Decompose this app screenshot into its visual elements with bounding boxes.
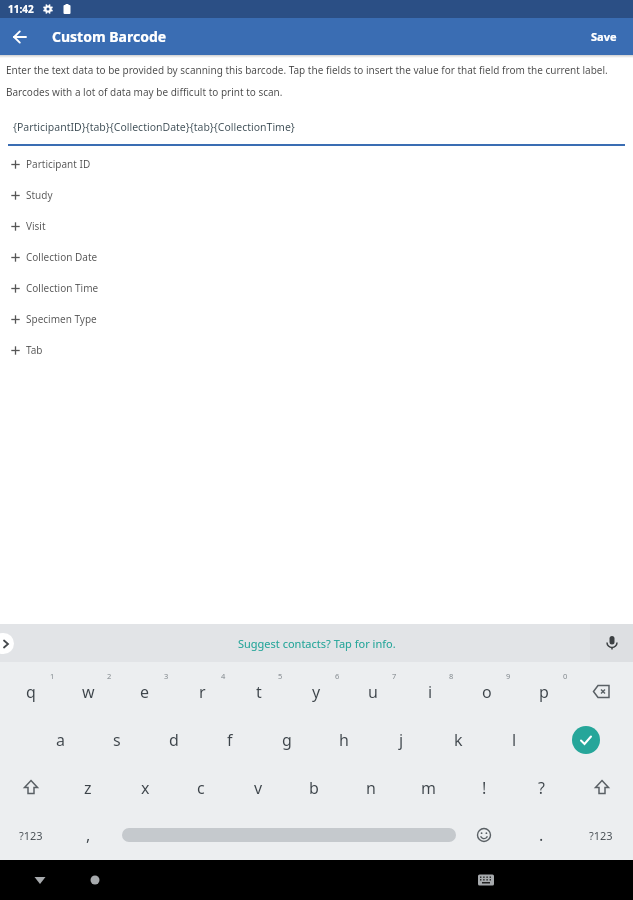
- button[interactable]: t: [237, 672, 281, 712]
- staticText: ?123: [589, 828, 613, 843]
- button[interactable]: Tab: [11, 336, 43, 364]
- button[interactable]: h: [322, 720, 366, 760]
- button[interactable]: ?123: [9, 815, 53, 855]
- button[interactable]: [9, 768, 53, 808]
- staticText: y: [312, 681, 321, 703]
- staticText: ,: [86, 824, 91, 846]
- button[interactable]: o: [465, 672, 509, 712]
- staticText: w: [82, 681, 95, 703]
- staticText: h: [339, 729, 349, 751]
- staticText: Collection Time: [26, 281, 99, 295]
- button[interactable]: g: [265, 720, 309, 760]
- staticText: ?: [538, 777, 545, 799]
- staticText: 6: [335, 671, 340, 681]
- staticText: v: [254, 777, 263, 799]
- staticText: 1: [50, 671, 55, 681]
- staticText: r: [199, 681, 206, 703]
- button[interactable]: d: [152, 720, 196, 760]
- button[interactable]: ?123: [579, 815, 623, 855]
- staticText: l: [512, 729, 517, 751]
- button[interactable]: n: [349, 768, 393, 808]
- button[interactable]: [24, 864, 56, 896]
- staticText: 11:42: [8, 2, 34, 16]
- button[interactable]: Study: [11, 181, 53, 209]
- button[interactable]: q: [9, 672, 53, 712]
- button[interactable]: u: [351, 672, 395, 712]
- staticText: 4: [221, 671, 226, 681]
- staticText: Collection Date: [26, 250, 98, 264]
- button[interactable]: k: [436, 720, 480, 760]
- staticText: s: [113, 729, 121, 751]
- button[interactable]: ?: [519, 768, 563, 808]
- button[interactable]: Collection Date: [11, 243, 98, 271]
- button[interactable]: f: [208, 720, 252, 760]
- button[interactable]: [79, 864, 111, 896]
- button[interactable]: Participant ID: [11, 150, 91, 178]
- staticText: 0: [563, 671, 568, 681]
- button[interactable]: m: [406, 768, 450, 808]
- button[interactable]: l: [492, 720, 536, 760]
- button[interactable]: i: [408, 672, 452, 712]
- staticText: 5: [278, 671, 283, 681]
- staticText: j: [399, 729, 404, 751]
- button[interactable]: ,: [66, 815, 110, 855]
- staticText: d: [169, 729, 179, 751]
- staticText: i: [428, 681, 433, 703]
- button[interactable]: e: [123, 672, 167, 712]
- button[interactable]: b: [292, 768, 336, 808]
- button[interactable]: w: [66, 672, 110, 712]
- button[interactable]: j: [379, 720, 423, 760]
- button[interactable]: [580, 768, 624, 808]
- button[interactable]: s: [95, 720, 139, 760]
- staticText: k: [454, 729, 463, 751]
- button[interactable]: a: [38, 720, 82, 760]
- button[interactable]: [580, 672, 624, 712]
- button[interactable]: [0, 633, 14, 654]
- staticText: ?123: [19, 828, 43, 843]
- button[interactable]: x: [123, 768, 167, 808]
- staticText: e: [140, 681, 150, 703]
- staticText: Specimen Type: [26, 312, 97, 326]
- staticText: p: [539, 681, 549, 703]
- staticText: Save: [591, 29, 617, 44]
- button[interactable]: .: [519, 815, 563, 855]
- button[interactable]: r: [180, 672, 224, 712]
- button[interactable]: v: [236, 768, 280, 808]
- button[interactable]: c: [179, 768, 223, 808]
- staticText: Study: [26, 188, 53, 202]
- staticText: f: [227, 729, 233, 751]
- button[interactable]: [122, 828, 456, 842]
- staticText: Tab: [26, 343, 43, 357]
- staticText: 2: [107, 671, 112, 681]
- staticText: 3: [164, 671, 169, 681]
- staticText: c: [197, 777, 205, 799]
- button[interactable]: [572, 726, 600, 754]
- staticText: g: [282, 729, 292, 751]
- button[interactable]: z: [66, 768, 110, 808]
- button[interactable]: Specimen Type: [11, 305, 97, 333]
- staticText: n: [366, 777, 376, 799]
- staticText: x: [141, 777, 150, 799]
- staticText: .: [539, 824, 544, 846]
- button[interactable]: [0, 18, 40, 55]
- button[interactable]: y: [294, 672, 338, 712]
- staticText: t: [256, 681, 262, 703]
- button[interactable]: [590, 624, 633, 662]
- button[interactable]: [470, 864, 502, 896]
- staticText: u: [368, 681, 378, 703]
- staticText: Participant ID: [26, 157, 91, 171]
- staticText: 8: [449, 671, 454, 681]
- button[interactable]: Save: [591, 29, 617, 44]
- button[interactable]: [462, 815, 506, 855]
- button[interactable]: Collection Time: [11, 274, 99, 302]
- staticText: 9: [506, 671, 511, 681]
- button[interactable]: p: [522, 672, 566, 712]
- staticText: Enter the text data to be provided by sc…: [6, 63, 608, 77]
- button[interactable]: !: [462, 768, 506, 808]
- button[interactable]: Visit: [11, 212, 46, 240]
- staticText: m: [421, 777, 436, 799]
- staticText: Custom Barcode: [52, 27, 167, 46]
- staticText: a: [56, 729, 65, 751]
- staticText: Suggest contacts? Tap for info.: [238, 636, 396, 651]
- staticText: z: [84, 777, 92, 799]
